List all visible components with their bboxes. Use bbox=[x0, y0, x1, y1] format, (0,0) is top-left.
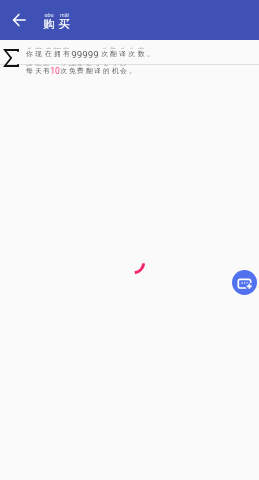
staticText: 现 bbox=[35, 49, 42, 58]
staticText: yì bbox=[96, 63, 99, 66]
staticText: 数 bbox=[138, 49, 145, 58]
staticText: yōng bbox=[53, 46, 61, 49]
staticText: fèi bbox=[78, 63, 82, 66]
staticText: 你 bbox=[26, 49, 33, 58]
staticText: 机 bbox=[112, 66, 119, 75]
staticText: 拥 bbox=[54, 49, 61, 58]
staticText: gòu bbox=[44, 12, 54, 17]
staticText: shù bbox=[138, 46, 144, 49]
staticText: xiàn bbox=[35, 46, 42, 49]
staticText: 99999 bbox=[71, 49, 99, 58]
staticText: fān bbox=[86, 63, 92, 66]
staticText: 次 bbox=[60, 66, 67, 75]
staticText: de bbox=[104, 63, 108, 66]
staticText: 免 bbox=[69, 66, 76, 75]
button[interactable]: New message bbox=[232, 270, 257, 295]
staticText: jī bbox=[114, 63, 116, 66]
staticText: mǎi bbox=[60, 12, 69, 17]
staticText: 有 bbox=[63, 49, 70, 58]
staticText: nǐ bbox=[28, 46, 31, 49]
staticText: fān bbox=[110, 46, 116, 49]
staticText: tiān bbox=[35, 63, 42, 66]
staticText: zài bbox=[46, 46, 51, 49]
staticText: yǒu bbox=[43, 63, 49, 66]
staticText: 买 bbox=[58, 17, 70, 29]
staticText: miǎn bbox=[68, 63, 77, 66]
staticText: 次 bbox=[101, 49, 108, 58]
staticText: 次 bbox=[128, 49, 135, 58]
staticText: yǒu bbox=[63, 46, 69, 49]
staticText: cì bbox=[103, 46, 106, 49]
staticText: 。 bbox=[147, 49, 154, 58]
staticText: 。 bbox=[129, 66, 136, 75]
staticText: 10 bbox=[50, 66, 60, 75]
staticText: 在 bbox=[45, 49, 52, 58]
staticText: 购 bbox=[43, 17, 55, 29]
staticText: cì bbox=[130, 46, 133, 49]
staticText: 每 bbox=[26, 66, 33, 75]
staticText: 译 bbox=[94, 66, 101, 75]
staticText: 费 bbox=[77, 66, 84, 75]
staticText: 翻 bbox=[86, 66, 93, 75]
button[interactable]: Back bbox=[8, 8, 32, 32]
staticText: 会 bbox=[120, 66, 127, 75]
staticText: 译 bbox=[119, 49, 126, 58]
staticText: 翻 bbox=[110, 49, 117, 58]
staticText: 的 bbox=[103, 66, 110, 75]
staticText: 有 bbox=[43, 66, 50, 75]
staticText: měi bbox=[26, 63, 32, 66]
staticText: 天 bbox=[35, 66, 42, 75]
staticText: yì bbox=[121, 46, 124, 49]
staticText: cì bbox=[62, 63, 65, 66]
staticText: huì bbox=[120, 63, 126, 66]
